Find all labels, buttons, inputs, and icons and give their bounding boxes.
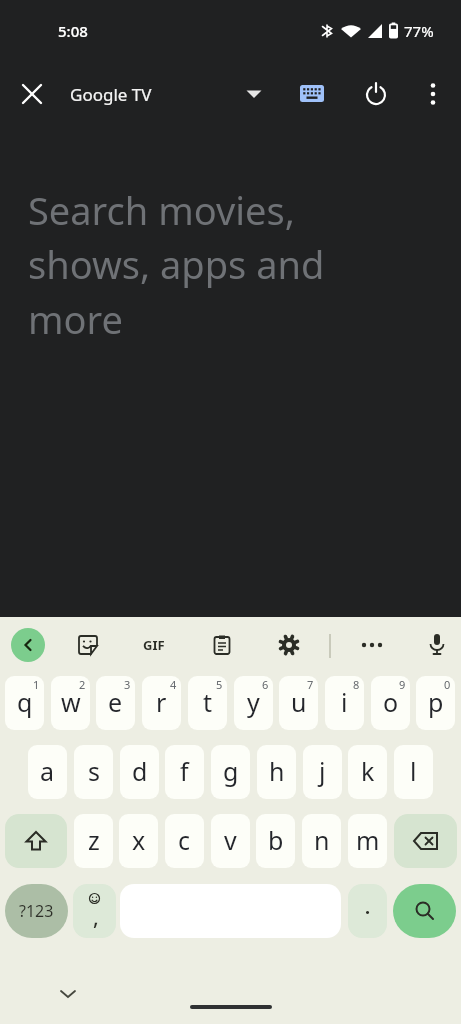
staticText: q — [17, 685, 33, 719]
button[interactable]: e — [96, 676, 135, 730]
staticText: 7 — [307, 677, 314, 692]
staticText: d — [132, 754, 148, 788]
staticText: ?123 — [19, 900, 54, 922]
button[interactable]: j — [303, 745, 342, 799]
button[interactable]: p — [416, 676, 455, 730]
button[interactable]: m — [348, 814, 387, 868]
button[interactable]: k — [348, 745, 387, 799]
button[interactable] — [352, 70, 400, 118]
staticText: 2 — [79, 677, 86, 692]
button[interactable]: n — [302, 814, 341, 868]
button[interactable]: w — [51, 676, 90, 730]
button[interactable]: l — [394, 745, 433, 799]
staticText: f — [180, 754, 189, 788]
button[interactable]: f — [165, 745, 204, 799]
staticText: 1 — [33, 677, 40, 692]
button[interactable]: a — [28, 745, 67, 799]
staticText: 77% — [404, 21, 434, 41]
button[interactable] — [5, 814, 67, 868]
button[interactable] — [11, 628, 45, 662]
staticText: y — [247, 685, 260, 719]
staticText: v — [224, 823, 237, 857]
button[interactable]: b — [256, 814, 295, 868]
staticText: b — [268, 823, 284, 857]
button[interactable]: . — [348, 884, 387, 938]
button[interactable] — [409, 70, 457, 118]
staticText: w — [61, 685, 81, 719]
staticText: o — [383, 685, 399, 719]
button[interactable] — [202, 625, 242, 665]
staticText: g — [223, 754, 239, 788]
button[interactable]: v — [211, 814, 250, 868]
button[interactable]: g — [211, 745, 250, 799]
button[interactable] — [352, 625, 392, 665]
staticText: i — [341, 685, 348, 719]
button[interactable]: y — [234, 676, 273, 730]
button[interactable]: u — [279, 676, 318, 730]
staticText: r — [156, 685, 167, 719]
button[interactable]: s — [74, 745, 113, 799]
button[interactable]: i — [325, 676, 364, 730]
staticText: a — [40, 754, 55, 788]
staticText: l — [410, 754, 417, 788]
staticText: Search movies, shows, apps and more — [28, 184, 325, 345]
staticText: 4 — [170, 677, 177, 692]
staticText: h — [269, 754, 285, 788]
staticText: , — [93, 903, 99, 932]
staticText: 6 — [262, 677, 269, 692]
button[interactable] — [393, 884, 456, 938]
button[interactable]: d — [120, 745, 159, 799]
staticText: . — [365, 895, 371, 920]
staticText: 9 — [399, 677, 406, 692]
button[interactable] — [120, 884, 341, 938]
staticText: GIF — [143, 636, 165, 654]
staticText: 3 — [124, 677, 131, 692]
staticText: x — [132, 823, 146, 857]
staticText: u — [291, 685, 307, 719]
button[interactable]: h — [257, 745, 296, 799]
staticText: t — [203, 685, 213, 719]
button[interactable] — [288, 70, 336, 118]
staticText: 0 — [444, 677, 451, 692]
button[interactable]: x — [119, 814, 158, 868]
staticText: k — [361, 754, 375, 788]
button[interactable]: q — [5, 676, 44, 730]
staticText: m — [356, 823, 380, 857]
button[interactable] — [269, 625, 309, 665]
staticText: s — [88, 754, 100, 788]
staticText: Google TV — [70, 83, 152, 106]
button[interactable]: r — [142, 676, 181, 730]
staticText: 8 — [353, 677, 360, 692]
button[interactable]: GIF — [134, 625, 174, 665]
button[interactable]: Google TV — [60, 70, 272, 118]
staticText: 5:08 — [58, 21, 88, 41]
staticText: 5 — [216, 677, 223, 692]
staticText: z — [88, 823, 100, 857]
staticText: e — [108, 685, 123, 719]
button[interactable]: c — [165, 814, 204, 868]
staticText: c — [178, 823, 191, 857]
button[interactable]: o — [371, 676, 410, 730]
button[interactable]: , — [73, 884, 116, 938]
button[interactable]: ?123 — [5, 884, 68, 938]
staticText: j — [319, 754, 326, 788]
button[interactable] — [394, 814, 457, 868]
button[interactable]: t — [188, 676, 227, 730]
staticText: p — [428, 685, 444, 719]
staticText: n — [314, 823, 330, 857]
button[interactable] — [68, 625, 108, 665]
button[interactable] — [417, 625, 457, 665]
button[interactable]: z — [74, 814, 113, 868]
button[interactable] — [8, 70, 56, 118]
